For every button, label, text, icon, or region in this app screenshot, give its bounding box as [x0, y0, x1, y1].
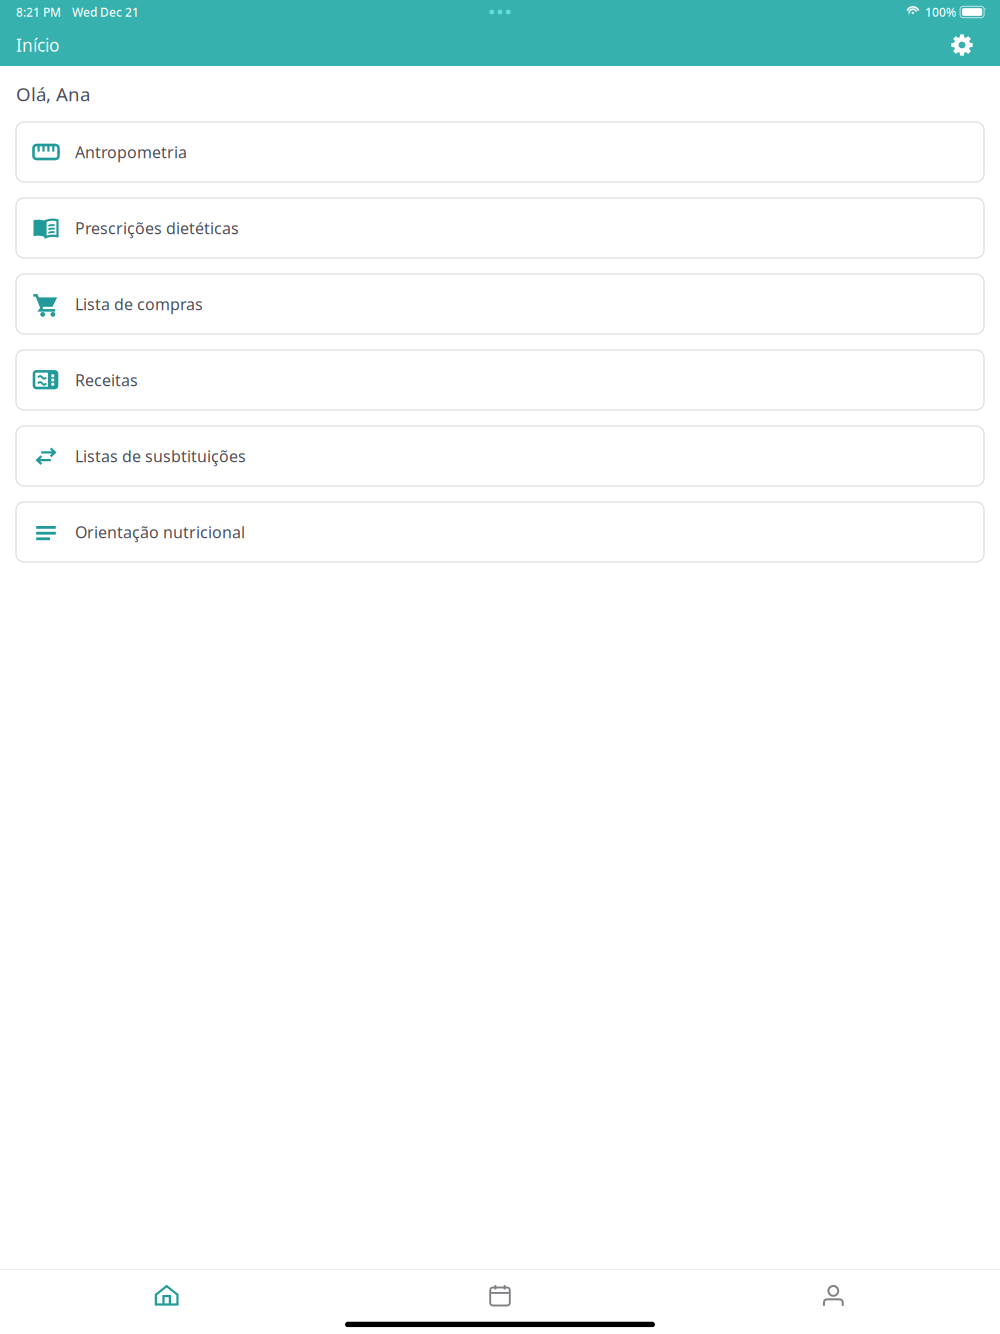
- staticText: Olá, Ana: [16, 82, 90, 106]
- button[interactable]: Antropometria: [16, 122, 984, 182]
- button[interactable]: Calendar: [333, 1272, 667, 1319]
- button[interactable]: Home: [0, 1272, 333, 1319]
- staticText: 100%: [925, 4, 956, 20]
- button[interactable]: Profile: [667, 1272, 1000, 1319]
- staticText: Lista de compras: [75, 293, 203, 315]
- staticText: Wed Dec 21: [72, 4, 139, 20]
- staticText: Prescrições dietéticas: [75, 217, 239, 239]
- button[interactable]: Orientação nutricional: [16, 502, 984, 562]
- staticText: Listas de susbtituições: [75, 445, 246, 467]
- button[interactable]: Listas de susbtituições: [16, 426, 984, 486]
- button[interactable]: Prescrições dietéticas: [16, 198, 984, 258]
- staticText: Orientação nutricional: [75, 521, 245, 543]
- staticText: 8:21 PM: [16, 4, 61, 20]
- staticText: Antropometria: [75, 141, 187, 163]
- button[interactable]: Lista de compras: [16, 274, 984, 334]
- button[interactable]: Receitas: [16, 350, 984, 410]
- button[interactable]: Settings: [940, 24, 984, 66]
- staticText: Receitas: [75, 369, 138, 391]
- staticText: Início: [16, 33, 59, 56]
